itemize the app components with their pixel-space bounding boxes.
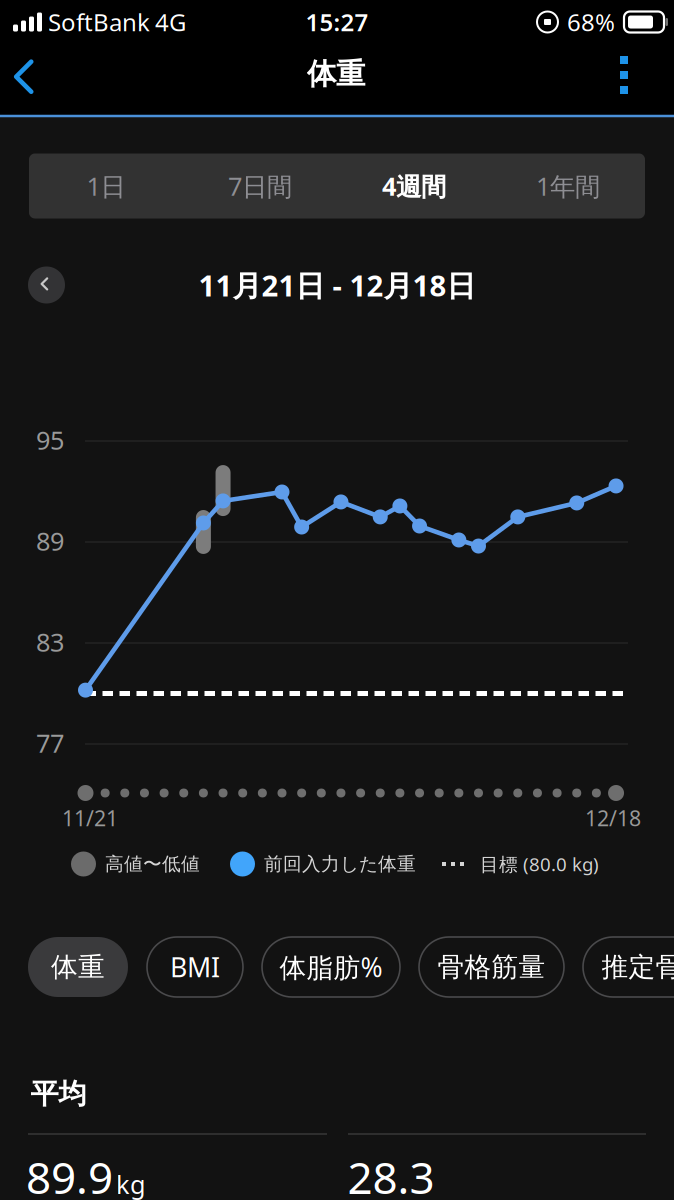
staticText: 平均 (30, 1077, 86, 1111)
staticText: 83 (36, 625, 64, 659)
staticText: 4G (155, 6, 186, 38)
button[interactable]: 7日間 (183, 153, 337, 218)
button[interactable]: Previous period (28, 266, 65, 303)
staticText: 前回入力した体重 (264, 852, 416, 875)
staticText: BMI (170, 949, 220, 985)
staticText: 28.3 (347, 1148, 434, 1200)
staticText: 1年間 (536, 169, 600, 203)
button[interactable]: 推定骨量 (583, 937, 674, 997)
staticText: SoftBank (48, 6, 150, 38)
staticText: 骨格筋量 (437, 951, 545, 983)
button[interactable]: 体脂肪% (262, 937, 400, 997)
staticText: 11月21日 - 12月18日 (198, 265, 475, 304)
staticText: 体脂肪% (279, 949, 382, 985)
staticText: 89 (36, 524, 64, 558)
button[interactable]: BMI (147, 937, 243, 997)
staticText: 89.9 (26, 1148, 113, 1200)
staticText: 77 (36, 726, 64, 760)
button[interactable]: More options (596, 39, 652, 111)
staticText: 体重 (51, 951, 105, 983)
staticText: 4週間 (382, 169, 446, 203)
button[interactable]: 1年間 (491, 153, 645, 218)
button[interactable]: 4週間 (337, 153, 491, 218)
button[interactable]: Back (0, 43, 61, 115)
staticText: 目標 (80.0 kg) (480, 852, 599, 876)
button[interactable]: 体重 (28, 937, 128, 997)
staticText: 高値〜低値 (105, 852, 200, 875)
staticText: 12/18 (585, 804, 641, 832)
staticText: 7日間 (228, 169, 292, 203)
staticText: 15:27 (305, 6, 368, 38)
staticText: 68% (567, 6, 615, 38)
staticText: 1日 (86, 169, 125, 203)
button[interactable]: 1日 (29, 153, 183, 218)
staticText: 推定骨量 (601, 951, 674, 983)
staticText: kg (116, 1167, 146, 1200)
staticText: 体重 (307, 56, 365, 92)
staticText: 11/21 (62, 804, 118, 832)
staticText: 95 (36, 423, 64, 457)
button[interactable]: 骨格筋量 (419, 937, 564, 997)
